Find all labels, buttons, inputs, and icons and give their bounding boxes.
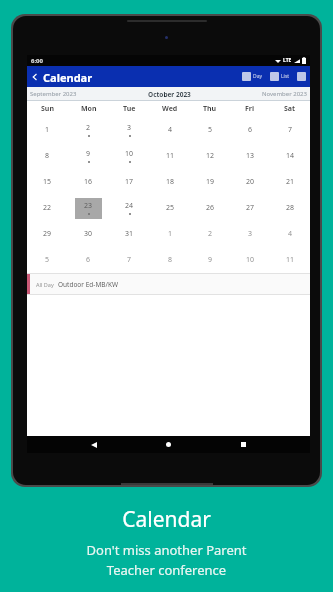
staticText: 11 bbox=[286, 255, 295, 265]
staticText: Teacher conference bbox=[0, 561, 333, 579]
button[interactable]: 28 bbox=[270, 195, 310, 221]
button[interactable]: 31 bbox=[109, 221, 150, 247]
staticText: Calendar bbox=[43, 70, 93, 85]
button[interactable]: 12 bbox=[190, 143, 230, 169]
button[interactable]: 2 bbox=[68, 117, 109, 143]
button[interactable]: 23 bbox=[68, 195, 109, 221]
staticText: 8 bbox=[45, 151, 50, 161]
staticText: 1 bbox=[168, 229, 173, 239]
staticText: 6:00 bbox=[31, 57, 43, 65]
button[interactable]: More options bbox=[297, 72, 306, 81]
button[interactable]: 6 bbox=[230, 117, 270, 143]
button[interactable]: 4 bbox=[270, 221, 310, 247]
button[interactable]: 25 bbox=[150, 195, 190, 221]
staticText: 3 bbox=[248, 229, 253, 239]
button[interactable]: 18 bbox=[150, 169, 190, 195]
staticText: 10 bbox=[246, 255, 255, 265]
staticText: 15 bbox=[43, 177, 52, 187]
staticText: Calendar bbox=[0, 505, 333, 534]
staticText: 3 bbox=[127, 123, 132, 133]
button[interactable]: 19 bbox=[190, 169, 230, 195]
staticText: 10 bbox=[125, 149, 134, 159]
staticText: October 2023 bbox=[148, 90, 191, 99]
button[interactable]: 15 bbox=[27, 169, 68, 195]
button[interactable]: All Day bbox=[27, 274, 310, 294]
button[interactable]: 21 bbox=[270, 169, 310, 195]
button[interactable]: 8 bbox=[150, 247, 190, 273]
button[interactable]: 6 bbox=[68, 247, 109, 273]
button[interactable]: 10 bbox=[230, 247, 270, 273]
staticText: 4 bbox=[288, 229, 293, 239]
staticText: Sat bbox=[284, 104, 296, 114]
button[interactable]: 16 bbox=[68, 169, 109, 195]
button[interactable]: 4 bbox=[150, 117, 190, 143]
staticText: Wed bbox=[162, 104, 178, 114]
button[interactable]: Home bbox=[160, 436, 177, 453]
button[interactable]: Back bbox=[85, 436, 102, 453]
staticText: Don't miss another Parent bbox=[0, 541, 333, 559]
button[interactable]: 26 bbox=[190, 195, 230, 221]
button[interactable]: 7 bbox=[109, 247, 150, 273]
button[interactable]: 9 bbox=[190, 247, 230, 273]
button[interactable]: September 2023 bbox=[27, 87, 122, 101]
button[interactable]: 29 bbox=[27, 221, 68, 247]
button[interactable]: October 2023 bbox=[122, 87, 216, 101]
button[interactable]: Back bbox=[27, 69, 43, 85]
staticText: September 2023 bbox=[30, 90, 77, 98]
staticText: 14 bbox=[286, 151, 295, 161]
staticText: List bbox=[281, 73, 290, 80]
button[interactable]: 13 bbox=[230, 143, 270, 169]
button[interactable]: 30 bbox=[68, 221, 109, 247]
staticText: 9 bbox=[86, 149, 91, 159]
button[interactable]: List view bbox=[270, 72, 290, 81]
staticText: 21 bbox=[286, 177, 295, 187]
staticText: All Day bbox=[36, 281, 54, 288]
staticText: 6 bbox=[86, 255, 91, 265]
staticText: 11 bbox=[166, 151, 175, 161]
button[interactable]: 3 bbox=[109, 117, 150, 143]
staticText: 26 bbox=[206, 203, 215, 213]
button[interactable]: 22 bbox=[27, 195, 68, 221]
button[interactable]: 1 bbox=[150, 221, 190, 247]
button[interactable]: 8 bbox=[27, 143, 68, 169]
staticText: Fri bbox=[245, 104, 255, 114]
button[interactable]: 14 bbox=[270, 143, 310, 169]
staticText: 17 bbox=[125, 177, 134, 187]
staticText: 4 bbox=[168, 125, 173, 135]
button[interactable]: 11 bbox=[270, 247, 310, 273]
staticText: LTE bbox=[283, 57, 292, 64]
button[interactable]: 10 bbox=[109, 143, 150, 169]
staticText: 25 bbox=[166, 203, 175, 213]
button[interactable]: 24 bbox=[109, 195, 150, 221]
staticText: 22 bbox=[43, 203, 52, 213]
button[interactable]: November 2023 bbox=[216, 87, 310, 101]
staticText: 5 bbox=[208, 125, 213, 135]
button[interactable]: 7 bbox=[270, 117, 310, 143]
button[interactable]: 27 bbox=[230, 195, 270, 221]
button[interactable]: 9 bbox=[68, 143, 109, 169]
button[interactable]: Recent apps bbox=[235, 436, 252, 453]
staticText: 28 bbox=[286, 203, 295, 213]
staticText: 9 bbox=[208, 255, 213, 265]
button[interactable]: 20 bbox=[230, 169, 270, 195]
button[interactable]: 2 bbox=[190, 221, 230, 247]
staticText: 2 bbox=[208, 229, 213, 239]
staticText: Day bbox=[253, 73, 263, 80]
staticText: Thu bbox=[203, 104, 217, 114]
staticText: 2 bbox=[86, 123, 91, 133]
staticText: 5 bbox=[45, 255, 50, 265]
staticText: 18 bbox=[166, 177, 175, 187]
button[interactable]: 5 bbox=[190, 117, 230, 143]
button[interactable]: 3 bbox=[230, 221, 270, 247]
staticText: Sun bbox=[41, 104, 54, 114]
button[interactable]: Day view bbox=[242, 72, 263, 81]
staticText: November 2023 bbox=[262, 90, 307, 98]
staticText: 27 bbox=[246, 203, 255, 213]
staticText: 8 bbox=[168, 255, 173, 265]
button[interactable]: 5 bbox=[27, 247, 68, 273]
button[interactable]: 1 bbox=[27, 117, 68, 143]
button[interactable]: 17 bbox=[109, 169, 150, 195]
button[interactable]: 11 bbox=[150, 143, 190, 169]
staticText: 19 bbox=[206, 177, 215, 187]
staticText: 6 bbox=[248, 125, 253, 135]
